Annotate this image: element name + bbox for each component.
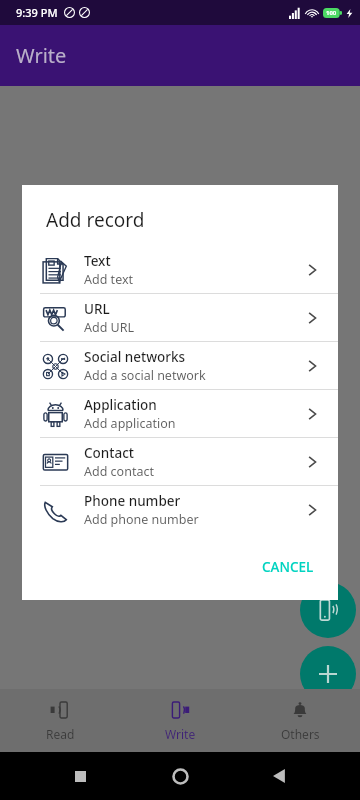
button[interactable]: Home: [160, 756, 200, 796]
staticText: Add contact: [84, 463, 154, 480]
staticText: Add record: [46, 207, 145, 233]
staticText: Add URL: [84, 319, 135, 336]
staticText: Others: [281, 726, 320, 742]
button[interactable]: Recents: [60, 756, 100, 796]
staticText: Contact: [84, 444, 134, 462]
staticText: Read: [46, 726, 75, 742]
staticText: CANCEL: [262, 558, 314, 576]
staticText: Add application: [84, 415, 176, 432]
staticText: Text: [84, 252, 111, 270]
staticText: Application: [84, 396, 157, 414]
staticText: Write: [165, 726, 196, 742]
staticText: Phone number: [84, 492, 181, 510]
staticText: Add text: [84, 271, 134, 288]
button[interactable]: Others: [240, 689, 360, 752]
button[interactable]: Write: [120, 689, 240, 752]
button[interactable]: Social networks: [22, 342, 338, 390]
staticText: Social networks: [84, 348, 186, 366]
button[interactable]: Application: [22, 390, 338, 438]
button[interactable]: URL: [22, 294, 338, 342]
staticText: URL: [84, 300, 110, 318]
staticText: 100: [326, 9, 337, 17]
button[interactable]: Back: [260, 756, 300, 796]
staticText: Add phone number: [84, 511, 199, 528]
button[interactable]: Text: [22, 246, 338, 294]
staticText: Write: [16, 42, 67, 69]
staticText: Add a social network: [84, 367, 206, 384]
button[interactable]: Contact: [22, 438, 338, 486]
button[interactable]: Add record: [300, 646, 356, 702]
button[interactable]: Phone number: [22, 486, 338, 533]
button[interactable]: CANCEL: [252, 552, 324, 582]
button[interactable]: Write tag: [300, 582, 356, 638]
staticText: 9:39 PM: [16, 5, 58, 20]
button[interactable]: Read: [0, 689, 120, 752]
